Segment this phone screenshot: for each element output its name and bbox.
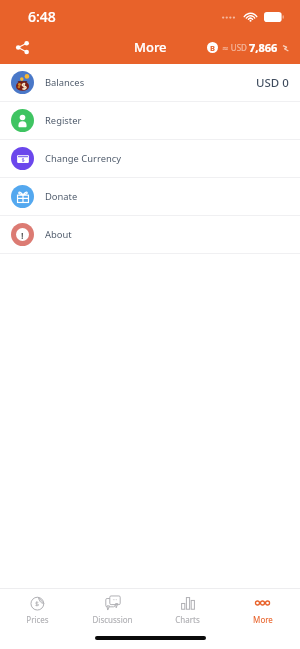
staticText: Donate: [45, 190, 78, 203]
staticText: More: [253, 614, 273, 625]
button[interactable]: Register: [0, 102, 300, 140]
staticText: USD 0: [256, 75, 289, 91]
staticText: Change Currency: [45, 152, 122, 165]
staticText: !: [21, 229, 24, 241]
button[interactable]: Bitcoin price, approximately USD 7,866: [207, 40, 290, 55]
button[interactable]: !: [0, 216, 300, 254]
button[interactable]: Discussion: [75, 589, 150, 630]
staticText: Prices: [26, 614, 49, 625]
staticText: About: [45, 228, 72, 241]
staticText: 6:48: [28, 7, 56, 26]
staticText: Charts: [175, 614, 200, 625]
staticText: Balances: [45, 76, 85, 89]
staticText: More: [134, 38, 167, 56]
staticText: 7,866: [249, 40, 278, 55]
button[interactable]: Charts: [150, 589, 225, 630]
staticText: Discussion: [92, 614, 133, 625]
button[interactable]: Donate: [0, 178, 300, 216]
button[interactable]: Balances: [0, 64, 300, 102]
button[interactable]: Share: [8, 33, 36, 61]
button[interactable]: Change Currency: [0, 140, 300, 178]
button[interactable]: More: [225, 589, 300, 630]
staticText: B: [210, 43, 215, 53]
staticText: Register: [45, 114, 82, 127]
button[interactable]: Prices: [0, 589, 75, 630]
staticText: ≈ USD: [222, 42, 247, 53]
